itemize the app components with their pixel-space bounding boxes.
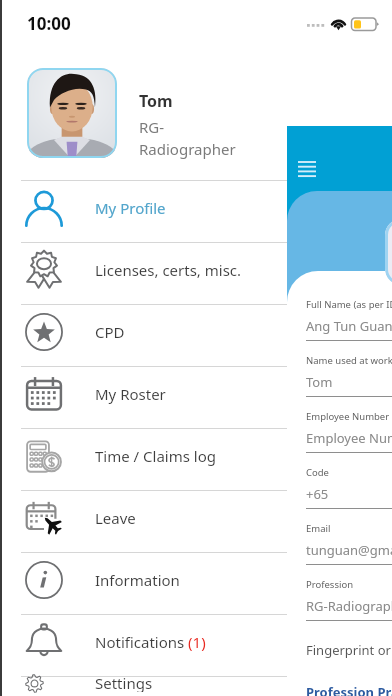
staticText: Information [95,570,180,590]
staticText: Settings [95,673,153,692]
staticText: Full Name (as per ID) [306,298,392,311]
staticText: RG-Radiographer [306,597,392,615]
button[interactable]: Information [0,552,287,614]
button[interactable]: Licenses, certs, misc. [0,242,287,304]
button[interactable]: My Profile [0,180,287,242]
button[interactable]: Notifications (1) [0,614,287,676]
staticText: Employee Number & institution [306,429,392,447]
staticText: CPD [95,322,125,342]
staticText: Profession Practised [306,683,392,696]
staticText: Fingerprint or Face ID [306,641,392,659]
staticText: Profession [306,578,354,591]
staticText: Leave [95,508,136,528]
button[interactable]: Open navigation menu [298,160,316,178]
staticText: My Profile [95,198,166,218]
staticText: Ang Tun Guan, Tom [306,317,392,335]
staticText: Tom [139,90,173,112]
button[interactable]: Time / Claims log [0,428,287,490]
staticText: Employee Number & institution [306,410,392,423]
staticText: Notifications (1) [95,632,206,652]
button[interactable]: My Roster [0,366,287,428]
staticText: Name used at work [306,354,392,367]
staticText: 10:00 [27,12,71,35]
staticText: Tom [306,373,333,391]
staticText: RG- Radiographer [139,117,236,160]
staticText: Code [306,466,329,479]
staticText: Email [306,522,331,535]
button[interactable]: Leave [0,490,287,552]
button[interactable]: CPD [0,304,287,366]
staticText: My Roster [95,384,166,404]
button[interactable]: Settings [0,676,287,696]
staticText: tunguan@gmail.com [306,541,392,559]
staticText: +65 [306,485,329,503]
staticText: Time / Claims log [95,446,216,466]
staticText: Licenses, certs, misc. [95,260,242,280]
